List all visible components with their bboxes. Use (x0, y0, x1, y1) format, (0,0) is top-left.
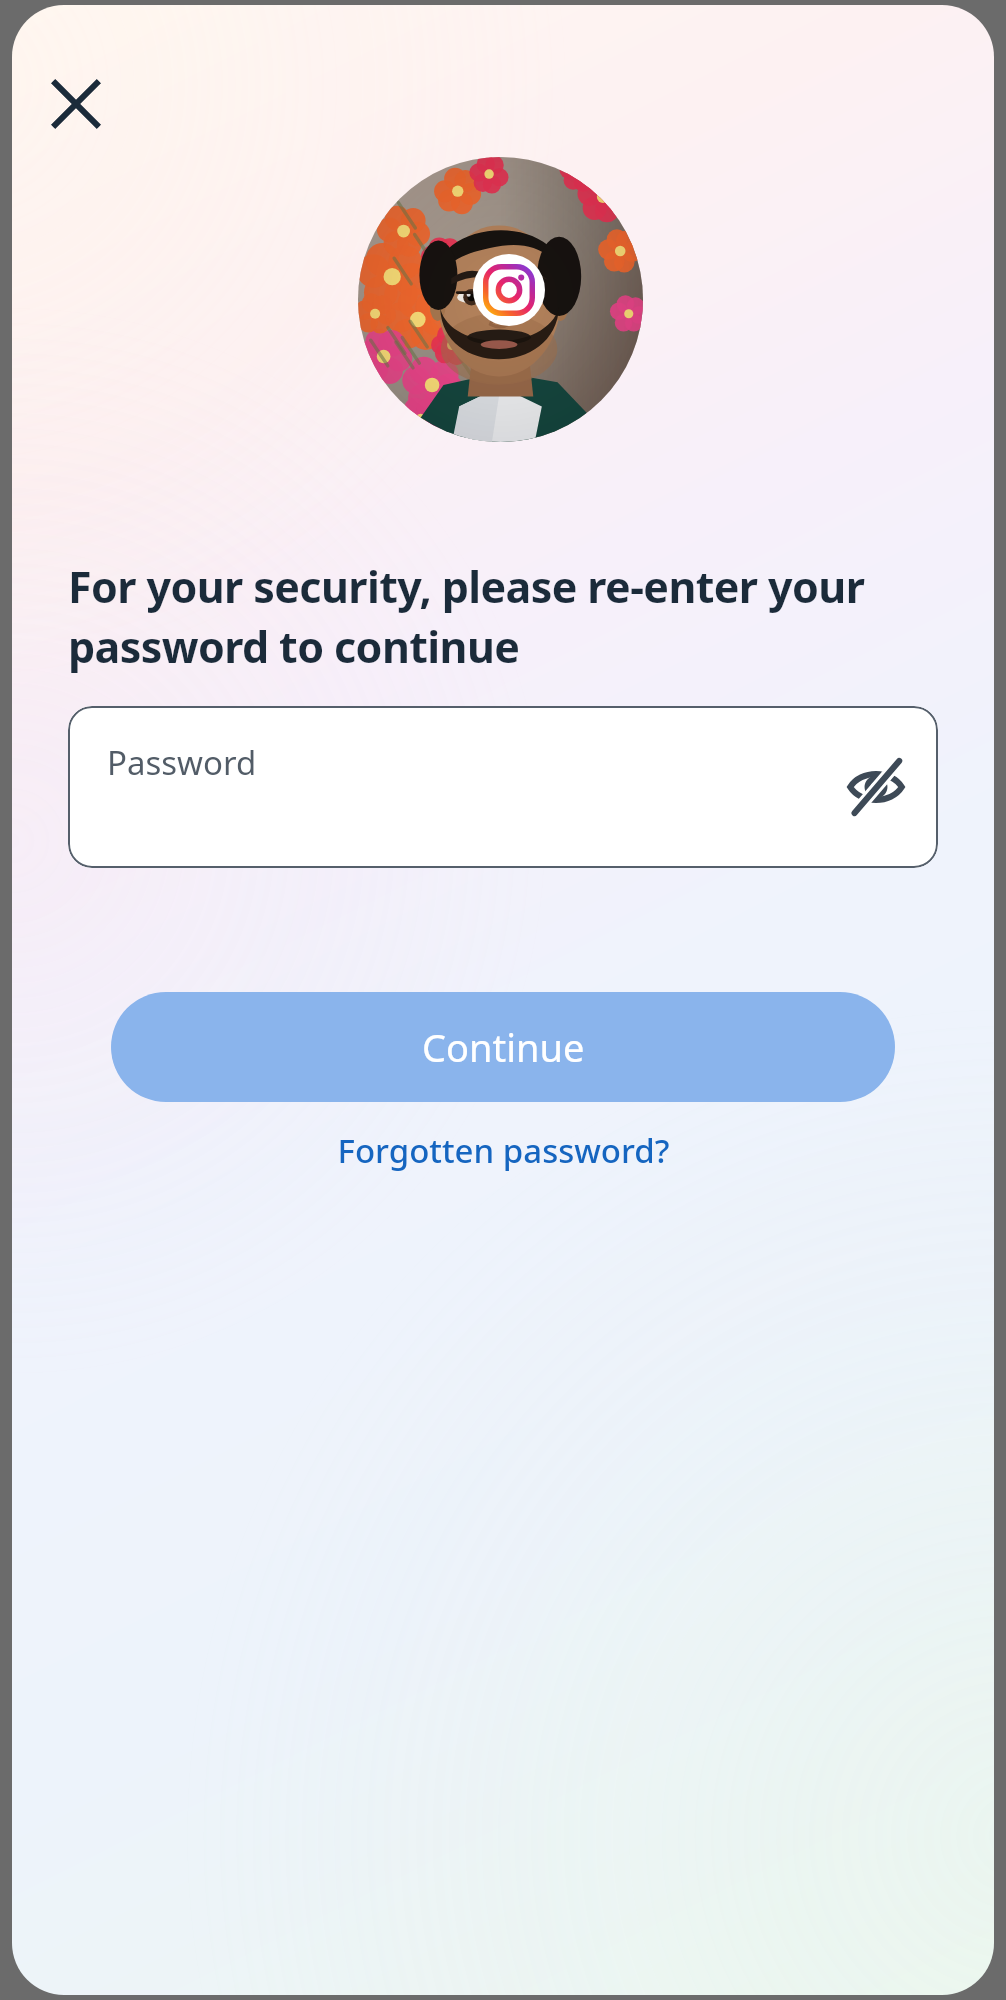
button[interactable]: Forgotten password? (319, 1116, 688, 1185)
staticText: Password (107, 740, 257, 785)
staticText: For your security, please re-enter your … (68, 557, 946, 676)
staticText: Forgotten password? (337, 1128, 670, 1173)
staticText: Continue (422, 1021, 585, 1073)
button[interactable]: Show password (836, 747, 916, 827)
button[interactable]: Continue (111, 992, 895, 1102)
button[interactable]: Close (43, 71, 109, 137)
button[interactable]: Password (68, 706, 938, 868)
